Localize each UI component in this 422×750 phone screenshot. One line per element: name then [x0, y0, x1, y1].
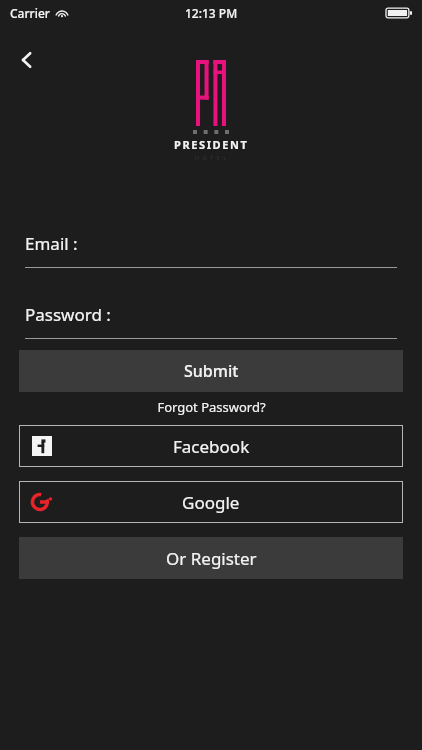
- staticText: Google: [182, 491, 240, 514]
- button[interactable]: Forgot Password?: [19, 398, 403, 416]
- staticText: 12:13 PM: [185, 5, 238, 21]
- staticText: Facebook: [173, 435, 250, 458]
- staticText: H O T E L: [195, 154, 228, 161]
- staticText: Or Register: [166, 547, 257, 570]
- button[interactable]: Facebook: [19, 425, 403, 467]
- staticText: Carrier: [10, 5, 50, 21]
- button[interactable]: Google: [19, 481, 403, 523]
- staticText: Forgot Password?: [157, 398, 266, 416]
- staticText: PRESIDENT: [174, 137, 249, 152]
- staticText: Password :: [25, 303, 111, 326]
- staticText: Submit: [184, 360, 239, 382]
- button[interactable]: Submit: [19, 350, 403, 392]
- button[interactable]: Back: [6, 40, 48, 80]
- staticText: Email :: [25, 232, 78, 255]
- button[interactable]: Or Register: [19, 537, 403, 579]
